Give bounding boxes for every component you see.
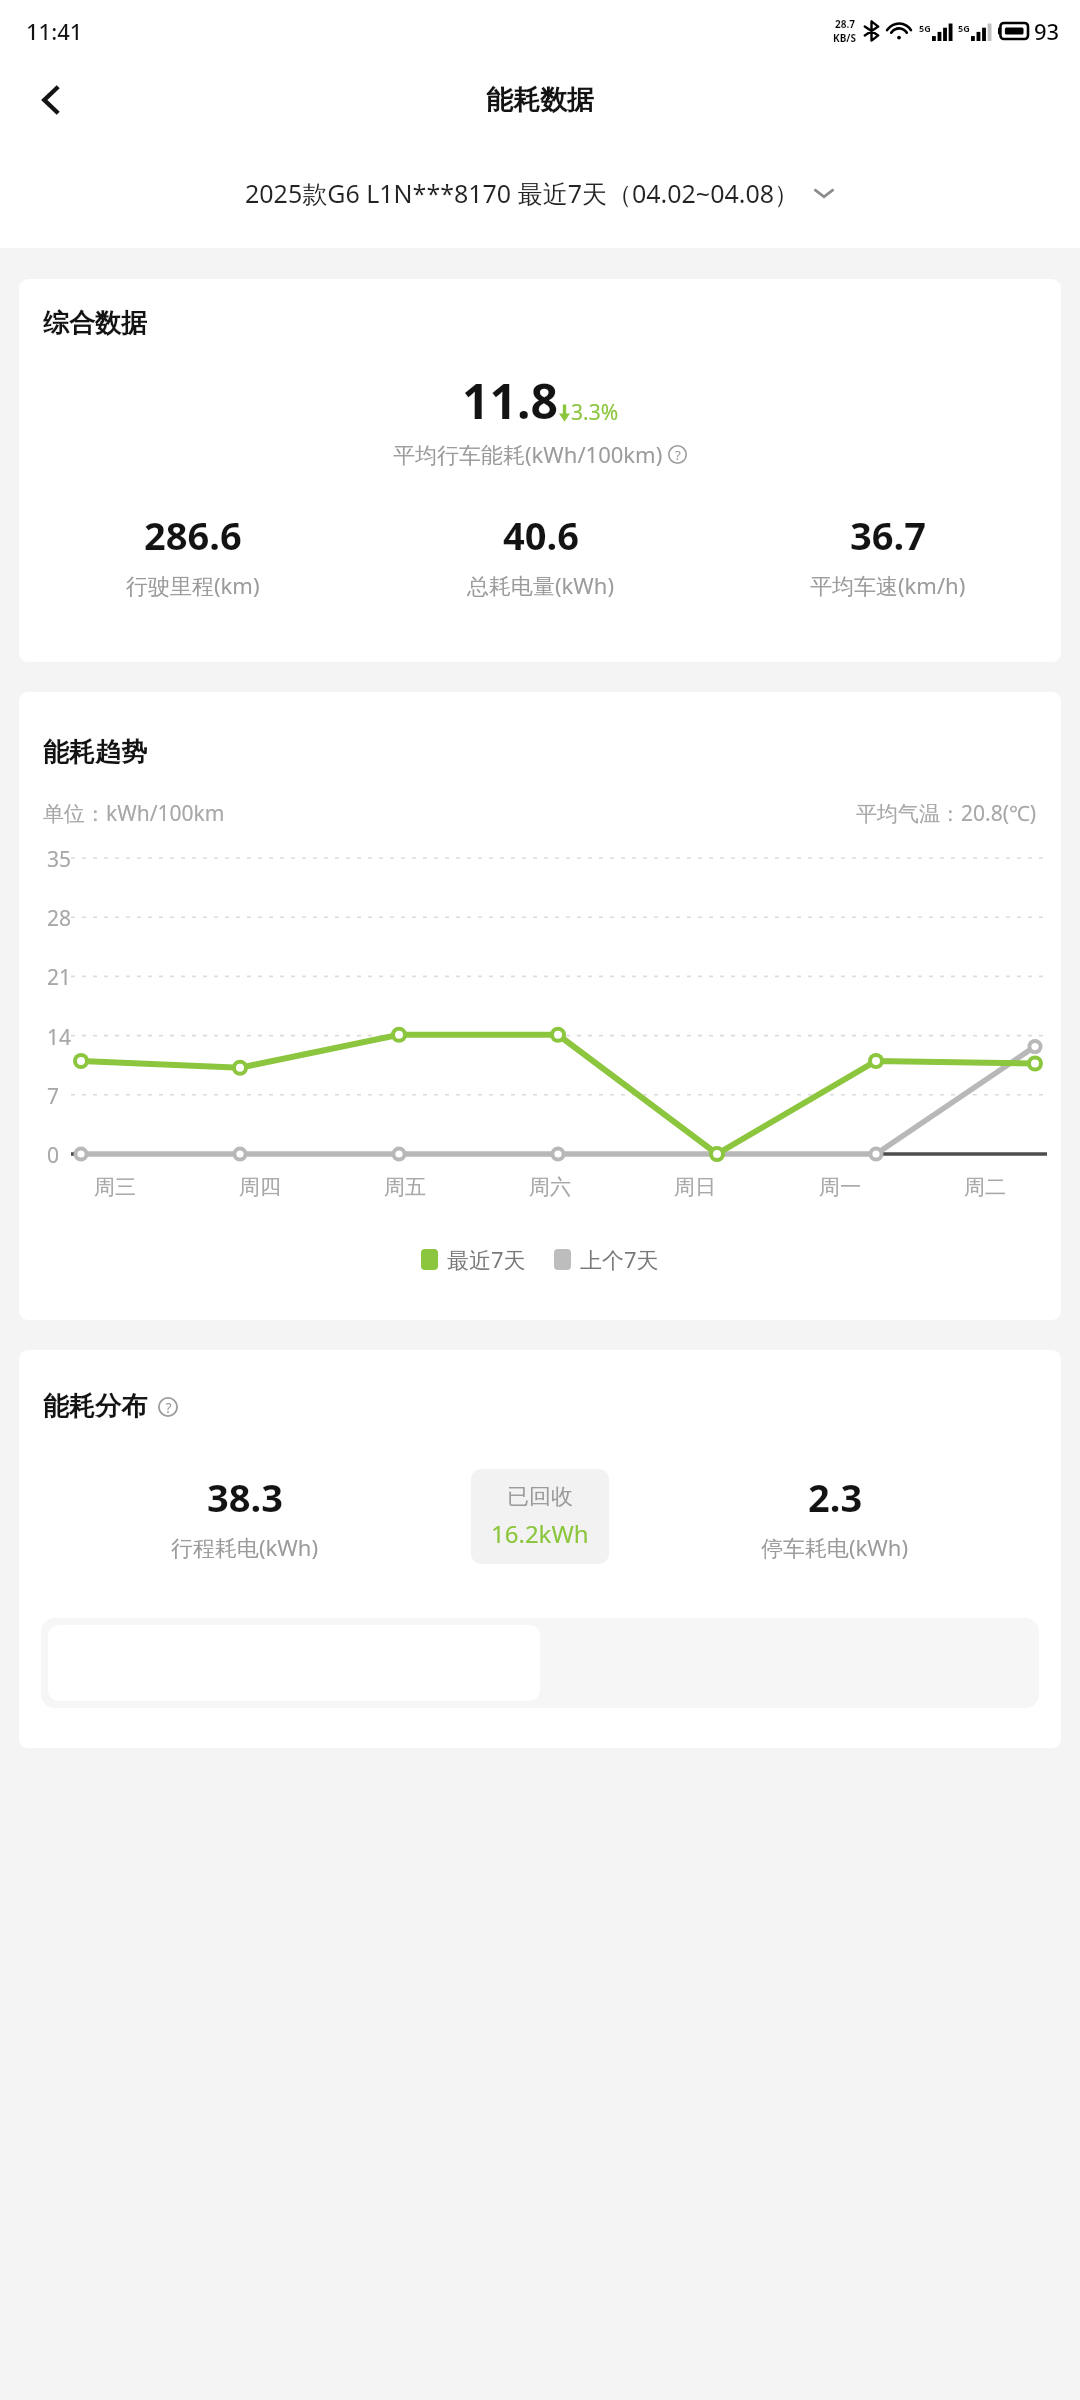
- staticText: 7: [47, 1082, 60, 1111]
- staticText: ?: [165, 1398, 172, 1417]
- staticText: 周五: [384, 1174, 426, 1200]
- button[interactable]: 286.6: [19, 509, 367, 600]
- staticText: 总耗电量(kWh): [467, 570, 615, 600]
- staticText: 35: [47, 845, 72, 874]
- staticText: 286.6: [144, 509, 242, 561]
- staticText: 5G: [919, 22, 931, 34]
- staticText: 2025款G6 L1N***8170 最近7天（04.02~04.08）: [245, 176, 800, 210]
- staticText: KB/S: [833, 31, 856, 45]
- staticText: 周日: [674, 1174, 716, 1200]
- staticText: 21: [47, 963, 72, 992]
- button[interactable]: 最近7天: [421, 1244, 526, 1274]
- staticText: 停车耗电(kWh): [761, 1532, 909, 1562]
- staticText: 93: [1034, 16, 1060, 46]
- staticText: 36.7: [850, 509, 926, 561]
- staticText: 最近7天: [447, 1244, 526, 1274]
- button[interactable]: 36.7: [714, 509, 1061, 600]
- staticText: 平均气温：20.8(℃): [856, 799, 1037, 828]
- staticText: 平均行车能耗(kWh/100km): [393, 439, 663, 469]
- staticText: 综合数据: [43, 307, 147, 340]
- staticText: 能耗分布: [43, 1390, 147, 1423]
- staticText: 16.2kWh: [491, 1517, 589, 1550]
- staticText: 行程耗电(kWh): [171, 1532, 319, 1562]
- staticText: 单位：kWh/100km: [43, 799, 225, 828]
- staticText: 11.8: [462, 368, 558, 433]
- staticText: 能耗数据: [486, 83, 594, 117]
- staticText: 11:41: [26, 16, 83, 46]
- staticText: 5G: [958, 22, 970, 34]
- staticText: 周六: [529, 1174, 571, 1200]
- staticText: 28: [47, 904, 72, 933]
- staticText: 14: [47, 1023, 72, 1052]
- staticText: 平均车速(km/h): [810, 570, 966, 600]
- staticText: ?: [675, 446, 681, 464]
- button[interactable]: Back: [22, 71, 80, 129]
- staticText: 上个7天: [580, 1244, 659, 1274]
- button[interactable]: 40.6: [367, 509, 714, 600]
- staticText: 38.3: [207, 1471, 283, 1523]
- staticText: 周二: [964, 1174, 1006, 1200]
- staticText: 2.3: [808, 1471, 863, 1523]
- staticText: 能耗趋势: [43, 736, 147, 769]
- staticText: 0: [47, 1141, 60, 1170]
- staticText: 周三: [94, 1174, 136, 1200]
- button[interactable]: 2025款G6 L1N***8170 最近7天（04.02~04.08）: [0, 138, 1080, 248]
- staticText: 3.3%: [571, 398, 619, 427]
- staticText: 周四: [239, 1174, 281, 1200]
- staticText: 已回收: [507, 1483, 573, 1511]
- staticText: 行驶里程(km): [126, 570, 260, 600]
- staticText: 28.7: [835, 17, 855, 31]
- staticText: 周一: [819, 1174, 861, 1200]
- button[interactable]: 上个7天: [554, 1244, 659, 1274]
- staticText: 40.6: [503, 509, 579, 561]
